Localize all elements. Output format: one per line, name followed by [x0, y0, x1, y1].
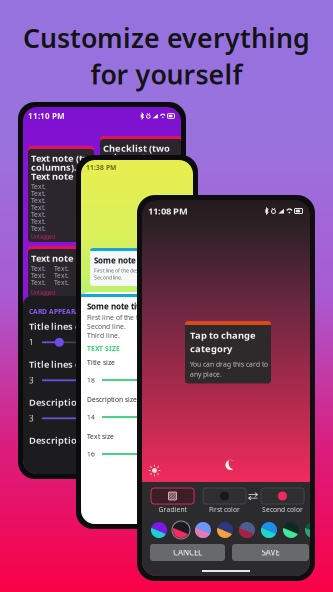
staticText: 11:38 PM	[86, 163, 116, 172]
staticText: Text.	[77, 264, 92, 273]
staticText: Text.	[77, 271, 92, 280]
staticText: Text note (two	[31, 152, 97, 164]
staticText: TEXT SIZE	[87, 344, 120, 353]
staticText: Second color	[262, 505, 303, 514]
staticText: 11:10 PM	[28, 111, 65, 121]
button[interactable]: Colour preset 2	[172, 521, 190, 539]
staticText: columns).	[31, 161, 77, 173]
staticText: Description lines	[29, 434, 107, 446]
staticText: Checklist (two	[103, 142, 170, 154]
button[interactable]: Text note (two	[28, 146, 94, 242]
staticText: 3	[29, 413, 34, 424]
staticText: Text.	[31, 210, 46, 219]
staticText: Text.	[54, 264, 69, 273]
staticText: Untagged	[31, 289, 55, 296]
button[interactable]: SAVE	[232, 544, 309, 561]
button[interactable]: Colour preset 3	[194, 521, 212, 539]
button[interactable]: Colour preset 1	[150, 521, 168, 539]
staticText: Text.	[31, 203, 46, 212]
staticText: Text.	[31, 278, 46, 287]
staticText: First line of the description.	[94, 267, 158, 274]
staticText: 3	[29, 375, 34, 386]
button[interactable]: Colour preset 8	[304, 521, 322, 539]
staticText: Text note (two	[31, 170, 97, 182]
staticText: Text.	[31, 224, 46, 233]
staticText: 1	[29, 337, 34, 348]
staticText: Customize everything	[23, 20, 310, 55]
staticText: SAVE	[261, 547, 279, 558]
staticText: Text.	[31, 182, 46, 191]
staticText: Third line.	[87, 331, 120, 340]
button[interactable]: Second color	[261, 488, 304, 514]
staticText: Title lines count	[29, 358, 102, 370]
button[interactable]: Colour preset 7	[282, 521, 300, 539]
staticText: 18	[87, 376, 95, 384]
staticText: 14	[87, 413, 95, 421]
staticText: Title size	[87, 358, 115, 367]
staticText: First color	[209, 505, 240, 514]
staticText: Text.	[31, 189, 46, 198]
staticText: Second line.	[87, 322, 126, 331]
staticText: Text note (one	[31, 252, 97, 264]
button[interactable]: Colour preset 4	[216, 521, 234, 539]
staticText: category	[190, 342, 232, 355]
staticText: CARD APPEARANCE	[29, 307, 93, 316]
staticText: CANCEL	[173, 547, 202, 558]
staticText: 16	[87, 450, 95, 458]
staticText: Text.	[31, 196, 46, 205]
staticText: Title lines count	[29, 320, 102, 332]
button[interactable]: Colour preset 6	[260, 521, 278, 539]
staticText: Second line.	[94, 274, 122, 281]
staticText: for yourself	[90, 56, 242, 92]
staticText: Text.	[77, 278, 92, 287]
staticText: Text.	[54, 278, 69, 287]
button[interactable]: Colour preset 5	[238, 521, 256, 539]
staticText: Text.	[54, 271, 69, 280]
button[interactable]: CANCEL	[150, 544, 225, 561]
staticText: Tap to change	[190, 329, 256, 341]
button[interactable]: Checklist (two	[100, 136, 182, 169]
staticText: Description size	[87, 395, 137, 404]
button[interactable]: First color	[203, 488, 246, 514]
staticText: Text.	[31, 217, 46, 226]
staticText: columns).	[103, 151, 149, 163]
staticText: Description lines	[29, 396, 107, 408]
staticText: Gradient	[158, 505, 186, 514]
staticText: Text.	[31, 264, 46, 273]
button[interactable]: Gradient	[151, 488, 194, 514]
staticText: Text size	[87, 432, 114, 441]
button[interactable]: Swap colours	[246, 488, 260, 504]
staticText: any place.	[190, 370, 222, 378]
staticText: First line of the text.	[87, 313, 150, 322]
staticText: 11:08 PM	[148, 205, 188, 217]
button[interactable]: Tap to change	[185, 321, 271, 383]
staticText: Text.	[31, 271, 46, 280]
button[interactable]: Text note (one	[28, 246, 94, 298]
staticText: You can drag this card to	[190, 360, 268, 369]
staticText: Some note title	[87, 301, 146, 312]
button[interactable]: Some note title	[90, 248, 188, 286]
staticText: Some note title	[94, 255, 153, 266]
staticText: Untagged	[31, 233, 55, 240]
